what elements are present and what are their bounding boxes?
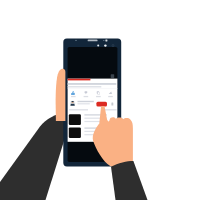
button[interactable]: Person holding a smartphone and tapping … [0,0,200,200]
